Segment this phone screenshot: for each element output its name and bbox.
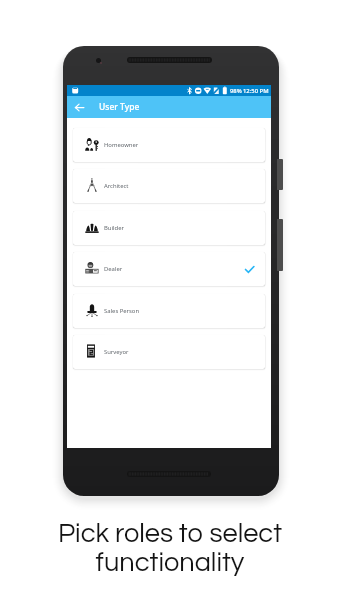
- button[interactable]: Navigate up: [67, 96, 92, 118]
- button[interactable]: Architect: [73, 169, 265, 203]
- other: Selected: [244, 264, 255, 275]
- staticText: Pick roles to select functionality: [58, 520, 282, 577]
- button[interactable]: Dealer: [73, 252, 265, 286]
- staticText: Sales Person: [104, 307, 140, 315]
- staticText: 98%: [230, 87, 242, 95]
- staticText: User Type: [99, 101, 140, 113]
- button[interactable]: Homeowner: [73, 128, 265, 162]
- staticText: Homeowner: [104, 141, 139, 149]
- button[interactable]: Sales Person: [73, 294, 265, 328]
- staticText: Builder: [104, 224, 124, 232]
- button[interactable]: Builder: [73, 211, 265, 245]
- staticText: 12:50 PM: [243, 87, 269, 95]
- staticText: Surveyor: [104, 348, 129, 356]
- staticText: Architect: [104, 182, 129, 190]
- button[interactable]: Surveyor: [73, 335, 265, 369]
- staticText: Dealer: [104, 265, 123, 273]
